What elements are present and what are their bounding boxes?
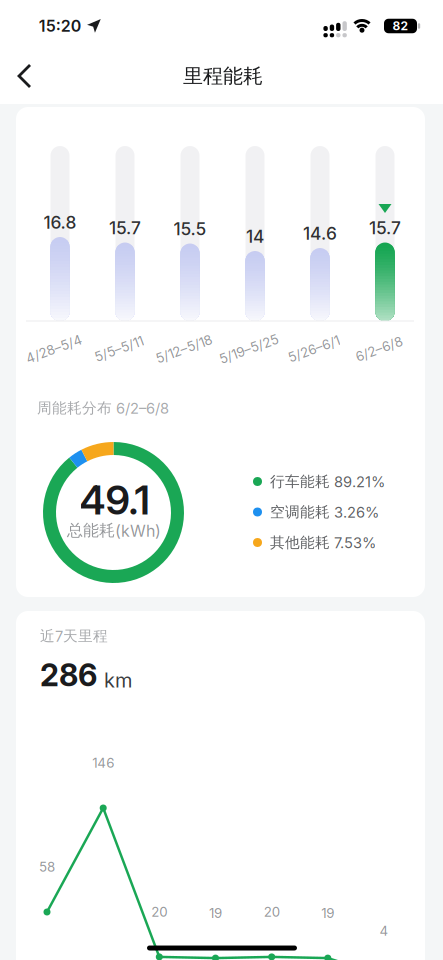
staticText: 20 [264,904,280,920]
staticText: 15.7 [369,218,401,238]
staticText: 5/5–5/11 [93,341,144,357]
staticText: 4 [379,923,388,939]
staticText: 5/26–6/1 [287,341,341,357]
staticText: 146 [92,755,114,771]
staticText: 其他能耗 7.53% [270,533,376,551]
staticText: 周能耗分布 6/2–6/8 [37,399,169,417]
staticText: 空调能耗 3.26% [270,503,379,521]
staticText: 5/19–5/25 [218,341,280,357]
staticText: 15.7 [109,218,141,238]
staticText: 20 [151,904,167,920]
staticText: 14.6 [303,223,337,244]
staticText: 15:20 [39,17,82,35]
staticText: 16.8 [43,212,76,233]
staticText: 6/2–6/8 [354,341,403,357]
staticText: 14 [246,226,264,247]
staticText: 4/28–5/4 [24,341,83,357]
button[interactable] [4,56,44,96]
staticText: 49.1 [79,476,149,524]
staticText: 5/12–5/18 [154,341,213,357]
staticText: 58 [39,859,55,875]
staticText: 19 [321,905,334,921]
staticText: 286 [40,657,97,693]
staticText: 里程能耗 [183,64,263,88]
staticText: 总能耗(kWh) [67,521,161,540]
staticText: 19 [209,905,222,921]
staticText: km [104,668,132,692]
staticText: 行车能耗 89.21% [270,472,385,490]
staticText: 近7天里程 [40,627,108,645]
staticText: 15.5 [173,219,206,239]
staticText: 82 [392,19,408,33]
